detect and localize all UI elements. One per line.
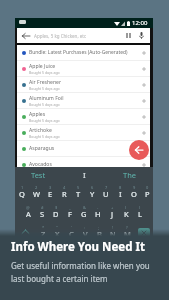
button[interactable]: Shift bbox=[15, 222, 36, 242]
staticText: & bbox=[83, 205, 86, 210]
staticText: Bought 5 days ago bbox=[29, 118, 60, 123]
button[interactable]: : bbox=[78, 222, 92, 242]
staticText: Bought 5 days ago bbox=[29, 102, 60, 107]
staticText: 4 bbox=[63, 185, 66, 190]
button[interactable]: Apple Juice bbox=[17, 61, 150, 76]
staticText: Avocados bbox=[29, 161, 52, 168]
button[interactable]: Apples bbox=[17, 109, 150, 124]
button[interactable]: Air Freshener bbox=[17, 77, 150, 92]
button[interactable]: * bbox=[36, 222, 50, 242]
staticText: " bbox=[56, 225, 58, 230]
button[interactable]: 6 bbox=[85, 182, 99, 202]
staticText: Get useful information like when you bbox=[11, 260, 150, 271]
staticText: Bought 5 days ago bbox=[29, 86, 60, 91]
staticText: E bbox=[48, 189, 53, 199]
staticText: C bbox=[69, 229, 74, 239]
button[interactable]: ( bbox=[119, 202, 133, 222]
staticText: 8 bbox=[119, 185, 122, 190]
button[interactable]: 5 bbox=[71, 182, 85, 202]
staticText: Apple Juice bbox=[29, 63, 56, 70]
button[interactable]: Bundle: Latest Purchases (Auto-Generated… bbox=[17, 45, 150, 60]
staticText: ' bbox=[71, 225, 72, 230]
staticText: B bbox=[97, 229, 102, 239]
button[interactable]: Backspace bbox=[134, 222, 153, 242]
button[interactable]: 1 bbox=[15, 182, 29, 202]
button[interactable]: Test bbox=[15, 167, 61, 182]
button[interactable]: ) bbox=[133, 202, 147, 222]
button[interactable]: + bbox=[105, 202, 119, 222]
button[interactable]: ' bbox=[64, 222, 78, 242]
button[interactable]: Back bbox=[19, 29, 32, 42]
staticText: M bbox=[124, 229, 131, 239]
staticText: F bbox=[68, 209, 72, 219]
button[interactable]: ; bbox=[92, 222, 106, 242]
staticText: Bought 5 days ago bbox=[29, 134, 60, 139]
staticText: The bbox=[123, 170, 137, 180]
button[interactable]: Artichoke bbox=[17, 125, 150, 140]
button[interactable]: Asparagus bbox=[17, 141, 150, 156]
button[interactable]: $ bbox=[49, 202, 63, 222]
button[interactable]: Keyboard bbox=[122, 29, 135, 42]
button[interactable]: - bbox=[91, 202, 105, 222]
staticText: I bbox=[83, 170, 86, 180]
button[interactable]: Aluminum Foil bbox=[17, 93, 150, 108]
button[interactable]: ! bbox=[106, 222, 120, 242]
button[interactable]: The bbox=[107, 167, 153, 182]
staticText: ) bbox=[139, 205, 141, 210]
button[interactable]: Back bbox=[129, 140, 149, 160]
button[interactable]: 3 bbox=[43, 182, 57, 202]
button[interactable]: Add bbox=[139, 160, 148, 169]
staticText: Info Where You Need It bbox=[11, 239, 145, 255]
staticText: V bbox=[83, 229, 88, 239]
staticText: 6 bbox=[91, 185, 94, 190]
staticText: S bbox=[40, 209, 45, 219]
staticText: A bbox=[26, 209, 31, 219]
staticText: Artichoke bbox=[29, 127, 52, 134]
button[interactable]: _ bbox=[63, 202, 77, 222]
button[interactable]: @ bbox=[21, 202, 35, 222]
button[interactable]: & bbox=[77, 202, 91, 222]
button[interactable]: 4 bbox=[57, 182, 71, 202]
staticText: @ bbox=[26, 205, 30, 210]
staticText: Aluminum Foil bbox=[29, 95, 64, 102]
button[interactable]: Add bbox=[139, 144, 148, 153]
staticText: 12:00 bbox=[132, 19, 148, 27]
staticText: - bbox=[97, 205, 99, 210]
button[interactable]: I bbox=[61, 167, 107, 182]
staticText: 0 bbox=[146, 185, 149, 190]
button[interactable]: Add bbox=[139, 96, 148, 105]
staticText: W bbox=[33, 189, 40, 199]
staticText: Test bbox=[31, 170, 46, 180]
staticText: _ bbox=[69, 205, 71, 210]
staticText: K bbox=[124, 209, 129, 219]
staticText: L bbox=[138, 209, 142, 219]
staticText: X bbox=[55, 229, 60, 239]
button[interactable]: Add bbox=[139, 128, 148, 137]
staticText: Apples bbox=[29, 111, 46, 118]
button[interactable]: Avocados bbox=[17, 157, 150, 172]
button[interactable]: 8 bbox=[113, 182, 127, 202]
staticText: Q bbox=[19, 189, 25, 199]
staticText: Z bbox=[41, 229, 46, 239]
button[interactable]: 2 bbox=[29, 182, 43, 202]
button[interactable]: Voice search bbox=[135, 29, 148, 42]
button[interactable]: 7 bbox=[99, 182, 113, 202]
button[interactable]: " bbox=[50, 222, 64, 242]
button[interactable]: 9 bbox=[127, 182, 141, 202]
staticText: U bbox=[103, 189, 109, 199]
staticText: J bbox=[111, 209, 114, 219]
staticText: D bbox=[53, 209, 59, 219]
staticText: N bbox=[110, 229, 116, 239]
staticText: $ bbox=[55, 205, 58, 210]
staticText: Air Freshener bbox=[29, 79, 62, 86]
staticText: 3 bbox=[49, 185, 52, 190]
button[interactable]: # bbox=[35, 202, 49, 222]
staticText: Bought 5 days ago bbox=[29, 70, 60, 75]
staticText: Apples, 5 kg Chicken, etc bbox=[34, 33, 87, 39]
button[interactable]: Add bbox=[139, 80, 148, 89]
button[interactable]: Add bbox=[139, 112, 148, 121]
button[interactable]: Add bbox=[139, 48, 148, 57]
button[interactable]: 0 bbox=[141, 182, 153, 202]
button[interactable]: ? bbox=[120, 222, 134, 242]
button[interactable]: Add bbox=[139, 64, 148, 73]
